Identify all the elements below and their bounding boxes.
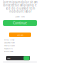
staticText: First line xyxy=(4,39,14,40)
staticText: Action xyxy=(17,34,23,36)
staticText: Fourth it xyxy=(4,47,13,49)
button[interactable]: Action xyxy=(9,32,31,37)
staticText: Lorem ipsum dolor sit am xyxy=(3,1,37,3)
button[interactable]: Continue xyxy=(3,20,37,26)
staticText: text xyxy=(6,57,10,59)
staticText: Fifth one xyxy=(4,50,13,52)
staticText: Continue xyxy=(13,22,27,24)
staticText: Label text xyxy=(15,15,25,17)
staticText: consectetur adipiscing e xyxy=(3,4,37,6)
staticText: Second row xyxy=(4,41,15,43)
staticText: sed do eiusmod tem xyxy=(5,7,34,10)
staticText: Third item xyxy=(4,44,15,46)
staticText: incididunt labor xyxy=(8,10,31,13)
